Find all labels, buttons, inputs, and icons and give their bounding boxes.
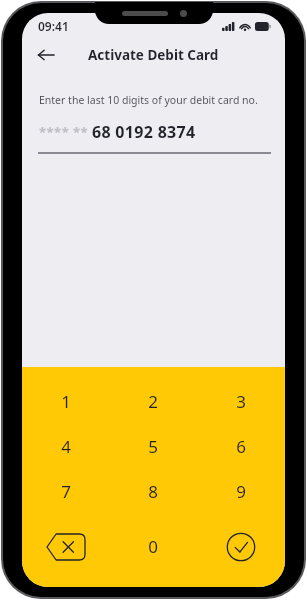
staticText: 68 0192 8374 <box>92 121 196 143</box>
staticText: 9 <box>236 480 246 503</box>
staticText: Enter the last 10 digits of your debit c… <box>39 93 258 107</box>
button[interactable]: 1 <box>22 379 109 424</box>
button[interactable]: 6 <box>197 424 285 469</box>
button[interactable]: Back <box>30 39 62 71</box>
staticText: 3 <box>236 390 246 413</box>
button[interactable]: 3 <box>197 379 285 424</box>
staticText: 7 <box>61 480 71 503</box>
button[interactable]: 8 <box>109 469 197 514</box>
button[interactable]: Delete <box>22 514 109 579</box>
staticText: 5 <box>148 435 158 458</box>
staticText: 6 <box>236 435 246 458</box>
button[interactable]: Confirm <box>197 514 285 579</box>
button[interactable]: 9 <box>197 469 285 514</box>
button[interactable]: 7 <box>22 469 109 514</box>
staticText: 09:41 <box>38 18 69 34</box>
staticText: 4 <box>61 435 71 458</box>
staticText: 2 <box>148 390 158 413</box>
button[interactable]: 4 <box>22 424 109 469</box>
staticText: 1 <box>61 390 71 413</box>
button[interactable]: 5 <box>109 424 197 469</box>
button[interactable]: 0 <box>109 514 197 579</box>
staticText: Activate Debit Card <box>88 46 219 64</box>
button[interactable]: 2 <box>109 379 197 424</box>
button[interactable]: **** ** <box>39 121 268 143</box>
staticText: **** ** <box>39 123 89 141</box>
staticText: 0 <box>148 535 158 558</box>
staticText: 8 <box>148 480 158 503</box>
